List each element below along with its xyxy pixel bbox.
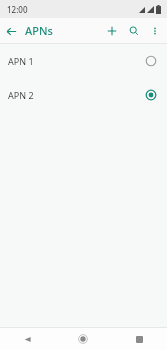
button[interactable]: More options: [145, 21, 165, 41]
staticText: APN 2: [8, 89, 34, 101]
button[interactable]: Add APN: [101, 20, 123, 42]
button[interactable]: Back: [0, 20, 22, 42]
button[interactable]: APN 2: [0, 78, 167, 112]
button[interactable]: APN 1: [0, 44, 167, 78]
button[interactable]: Search: [123, 20, 145, 42]
staticText: APN 1: [8, 55, 34, 67]
staticText: APNs: [25, 23, 53, 38]
button[interactable]: Recent apps: [111, 328, 167, 350]
button[interactable]: Back: [0, 328, 55, 350]
button[interactable]: Home: [55, 328, 111, 350]
staticText: 12:00: [7, 4, 28, 15]
